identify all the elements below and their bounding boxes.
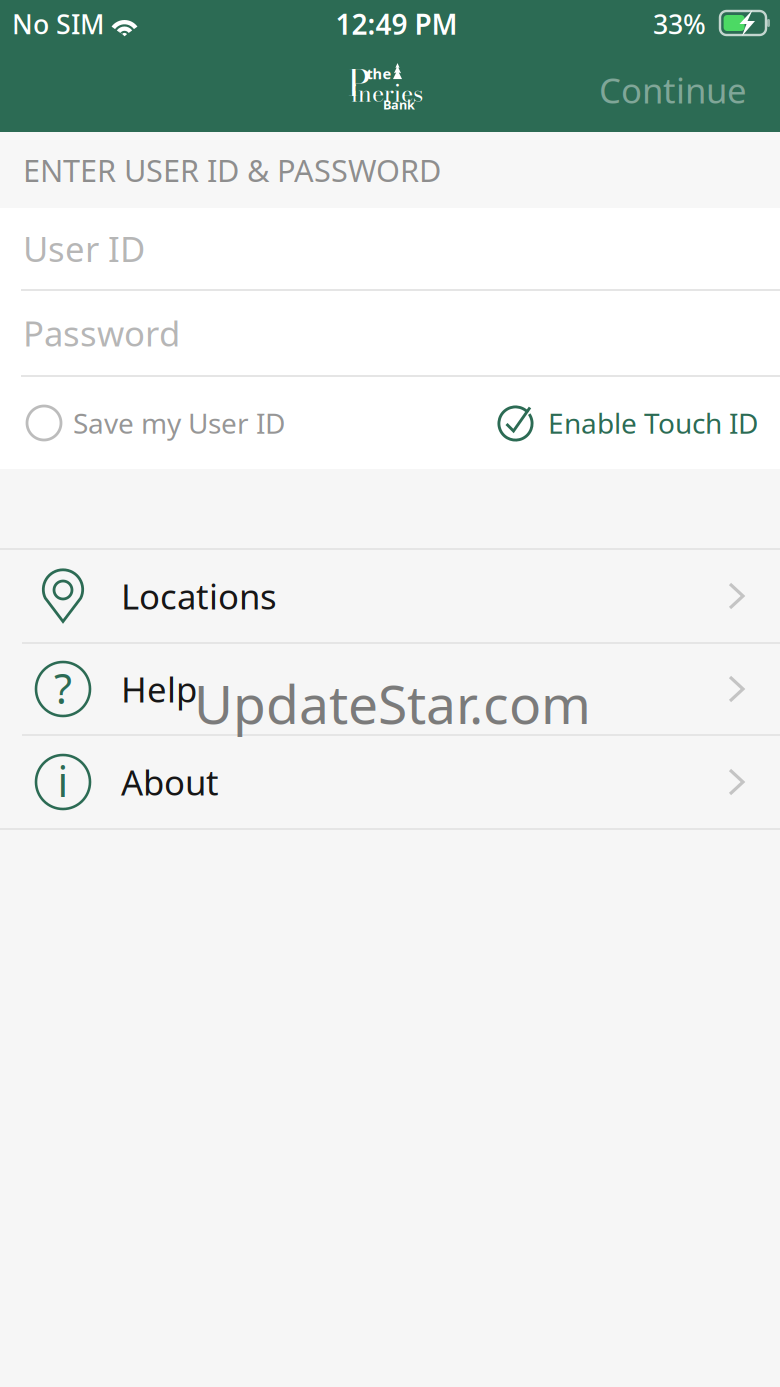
staticText: Continue xyxy=(599,67,747,113)
button[interactable]: Save my User ID xyxy=(27,404,285,442)
button[interactable]: i xyxy=(0,736,780,828)
staticText: the xyxy=(366,63,391,83)
staticText: ENTER USER ID & PASSWORD xyxy=(23,150,441,190)
staticText: No SIM xyxy=(12,6,104,42)
staticText: P xyxy=(348,55,370,110)
staticText: ? xyxy=(54,661,72,715)
staticText: Password xyxy=(23,310,180,356)
button[interactable]: Enable Touch ID xyxy=(497,404,758,442)
staticText: Help xyxy=(121,666,197,712)
staticText: UpdateStar.com xyxy=(194,668,591,739)
staticText: 12:49 PM xyxy=(335,5,457,43)
staticText: i xyxy=(57,754,68,808)
button[interactable]: Locations xyxy=(0,550,780,642)
staticText: 33% xyxy=(653,6,706,42)
staticText: Locations xyxy=(121,573,277,619)
staticText: Save my User ID xyxy=(73,404,285,442)
staticText: About xyxy=(121,759,219,805)
staticText: Bank xyxy=(383,96,415,113)
button[interactable]: ? xyxy=(0,644,780,734)
staticText: Enable Touch ID xyxy=(548,404,758,442)
staticText: User ID xyxy=(23,225,145,271)
staticText: ineries xyxy=(351,75,423,111)
button[interactable]: Continue xyxy=(575,51,780,129)
